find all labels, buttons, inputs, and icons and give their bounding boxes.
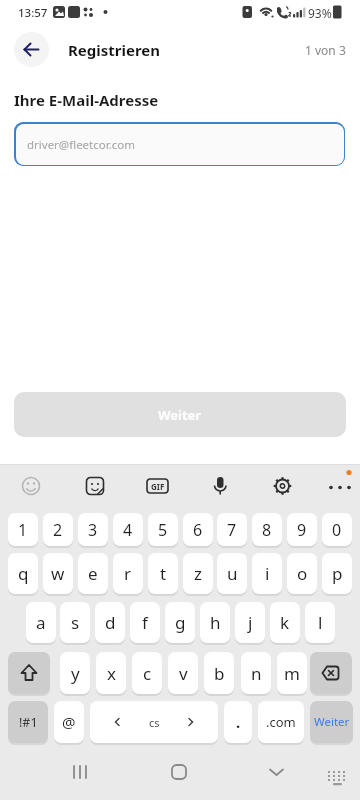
staticText: 93%	[308, 5, 332, 21]
staticText: p	[332, 562, 343, 585]
staticText: a	[36, 611, 46, 634]
staticText: 0	[332, 519, 342, 541]
button[interactable]: cs	[90, 701, 218, 743]
button[interactable]: r	[113, 553, 143, 594]
staticText: v	[179, 662, 188, 685]
button[interactable]: k	[270, 602, 300, 643]
button[interactable]: 2	[43, 513, 73, 546]
button[interactable]: p	[322, 553, 352, 594]
button[interactable]: 6	[183, 513, 213, 546]
staticText: b	[214, 662, 225, 685]
button[interactable]: @	[54, 701, 84, 743]
staticText: j	[248, 611, 253, 634]
staticText: l	[318, 611, 323, 634]
button[interactable]: h	[200, 602, 230, 643]
button[interactable]: m	[277, 652, 307, 694]
staticText: 7	[227, 519, 237, 541]
button[interactable]: driver@fleetcor.com	[14, 122, 345, 166]
button[interactable]: d	[95, 602, 125, 643]
staticText: GIF	[151, 481, 165, 492]
button[interactable]: q	[8, 553, 38, 594]
button[interactable]: 3	[78, 513, 108, 546]
button[interactable]: a	[26, 602, 56, 643]
staticText: 9	[297, 519, 307, 541]
staticText: driver@fleetcor.com	[27, 137, 135, 153]
button[interactable]: 4	[113, 513, 143, 546]
button[interactable]: .com	[258, 701, 304, 743]
staticText: Ihre E-Mail-Adresse	[14, 90, 159, 110]
button[interactable]: t	[148, 553, 178, 594]
staticText: 4	[123, 519, 133, 541]
button[interactable]: b	[204, 652, 234, 694]
staticText: Weiter	[314, 714, 350, 730]
staticText: 3	[88, 519, 98, 541]
staticText: g	[175, 611, 186, 634]
button[interactable]: l	[305, 602, 335, 643]
button[interactable]	[256, 752, 296, 792]
staticText: i	[265, 562, 270, 585]
staticText: r	[124, 562, 132, 585]
staticText: z	[194, 562, 202, 585]
staticText: .	[236, 712, 241, 732]
button[interactable]	[310, 652, 352, 694]
button[interactable]: s	[60, 602, 90, 643]
staticText: q	[18, 562, 29, 585]
staticText: @	[62, 712, 76, 732]
staticText: 6	[193, 519, 203, 541]
button[interactable]	[14, 32, 49, 67]
button[interactable]: g	[165, 602, 195, 643]
staticText: 13:57	[18, 5, 48, 21]
button[interactable]: y	[60, 652, 90, 694]
button[interactable]: u	[217, 553, 247, 594]
button[interactable]: j	[235, 602, 265, 643]
staticText: m	[284, 662, 300, 685]
staticText: 1 von 3	[305, 42, 346, 58]
button[interactable]: v	[168, 652, 198, 694]
staticText: h	[210, 611, 221, 634]
staticText: o	[297, 562, 308, 585]
staticText: cs	[149, 715, 160, 730]
button[interactable]: n	[241, 652, 271, 694]
staticText: e	[88, 562, 98, 585]
staticText: t	[160, 562, 167, 585]
button[interactable]: z	[183, 553, 213, 594]
button[interactable]: w	[43, 553, 73, 594]
button[interactable]: e	[78, 553, 108, 594]
button[interactable]: 8	[252, 513, 282, 546]
staticText: .com	[266, 713, 296, 731]
staticText: Registrieren	[68, 40, 161, 60]
button[interactable]	[60, 752, 100, 792]
button[interactable]	[160, 752, 200, 792]
staticText: 8	[262, 519, 272, 541]
button[interactable]: 5	[148, 513, 178, 546]
staticText: 2	[53, 519, 63, 541]
staticText: k	[280, 611, 290, 634]
staticText: c	[143, 662, 152, 685]
button[interactable]: 9	[287, 513, 317, 546]
button[interactable]: .	[224, 701, 252, 743]
staticText: d	[105, 611, 116, 634]
button[interactable]	[8, 652, 50, 694]
staticText: 1	[18, 519, 28, 541]
staticText: y	[71, 662, 80, 685]
button[interactable]: o	[287, 553, 317, 594]
button[interactable]: Weiter	[14, 392, 346, 437]
button[interactable]: x	[96, 652, 126, 694]
button[interactable]: f	[130, 602, 160, 643]
staticText: f	[142, 611, 148, 634]
staticText: u	[227, 562, 238, 585]
button[interactable]: i	[252, 553, 282, 594]
staticText: Weiter	[158, 406, 202, 424]
staticText: 5	[158, 519, 168, 541]
staticText: s	[71, 611, 80, 634]
button[interactable]: 7	[217, 513, 247, 546]
staticText: n	[251, 662, 262, 685]
button[interactable]: c	[132, 652, 162, 694]
staticText: !#1	[19, 714, 38, 731]
staticText: x	[107, 662, 116, 685]
button[interactable]: !#1	[8, 701, 48, 743]
button[interactable]: 1	[8, 513, 38, 546]
staticText: w	[51, 562, 65, 585]
button[interactable]: Weiter	[310, 701, 353, 743]
button[interactable]: 0	[322, 513, 352, 546]
